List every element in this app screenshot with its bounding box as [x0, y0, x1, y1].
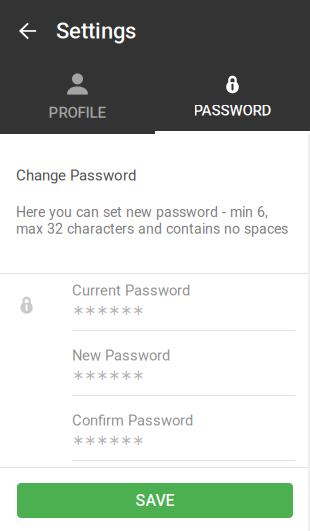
button[interactable]: Back — [0, 0, 56, 62]
staticText: PASSWORD — [193, 102, 271, 119]
button[interactable]: PROFILE — [0, 62, 155, 134]
button[interactable]: PASSWORD — [155, 62, 310, 134]
staticText: SAVE — [135, 491, 174, 510]
staticText: ∗∗∗∗∗∗ — [72, 431, 144, 449]
button[interactable]: SAVE — [17, 483, 293, 518]
staticText: Settings — [56, 18, 136, 44]
staticText: Here you can set new password - min 6, m… — [16, 204, 288, 237]
staticText: Current Password — [72, 282, 190, 299]
staticText: ∗∗∗∗∗∗ — [72, 301, 144, 319]
staticText: New Password — [72, 347, 170, 364]
staticText: Change Password — [16, 167, 136, 184]
staticText: ∗∗∗∗∗∗ — [72, 366, 144, 384]
staticText: Confirm Password — [72, 412, 193, 429]
staticText: PROFILE — [48, 104, 106, 121]
